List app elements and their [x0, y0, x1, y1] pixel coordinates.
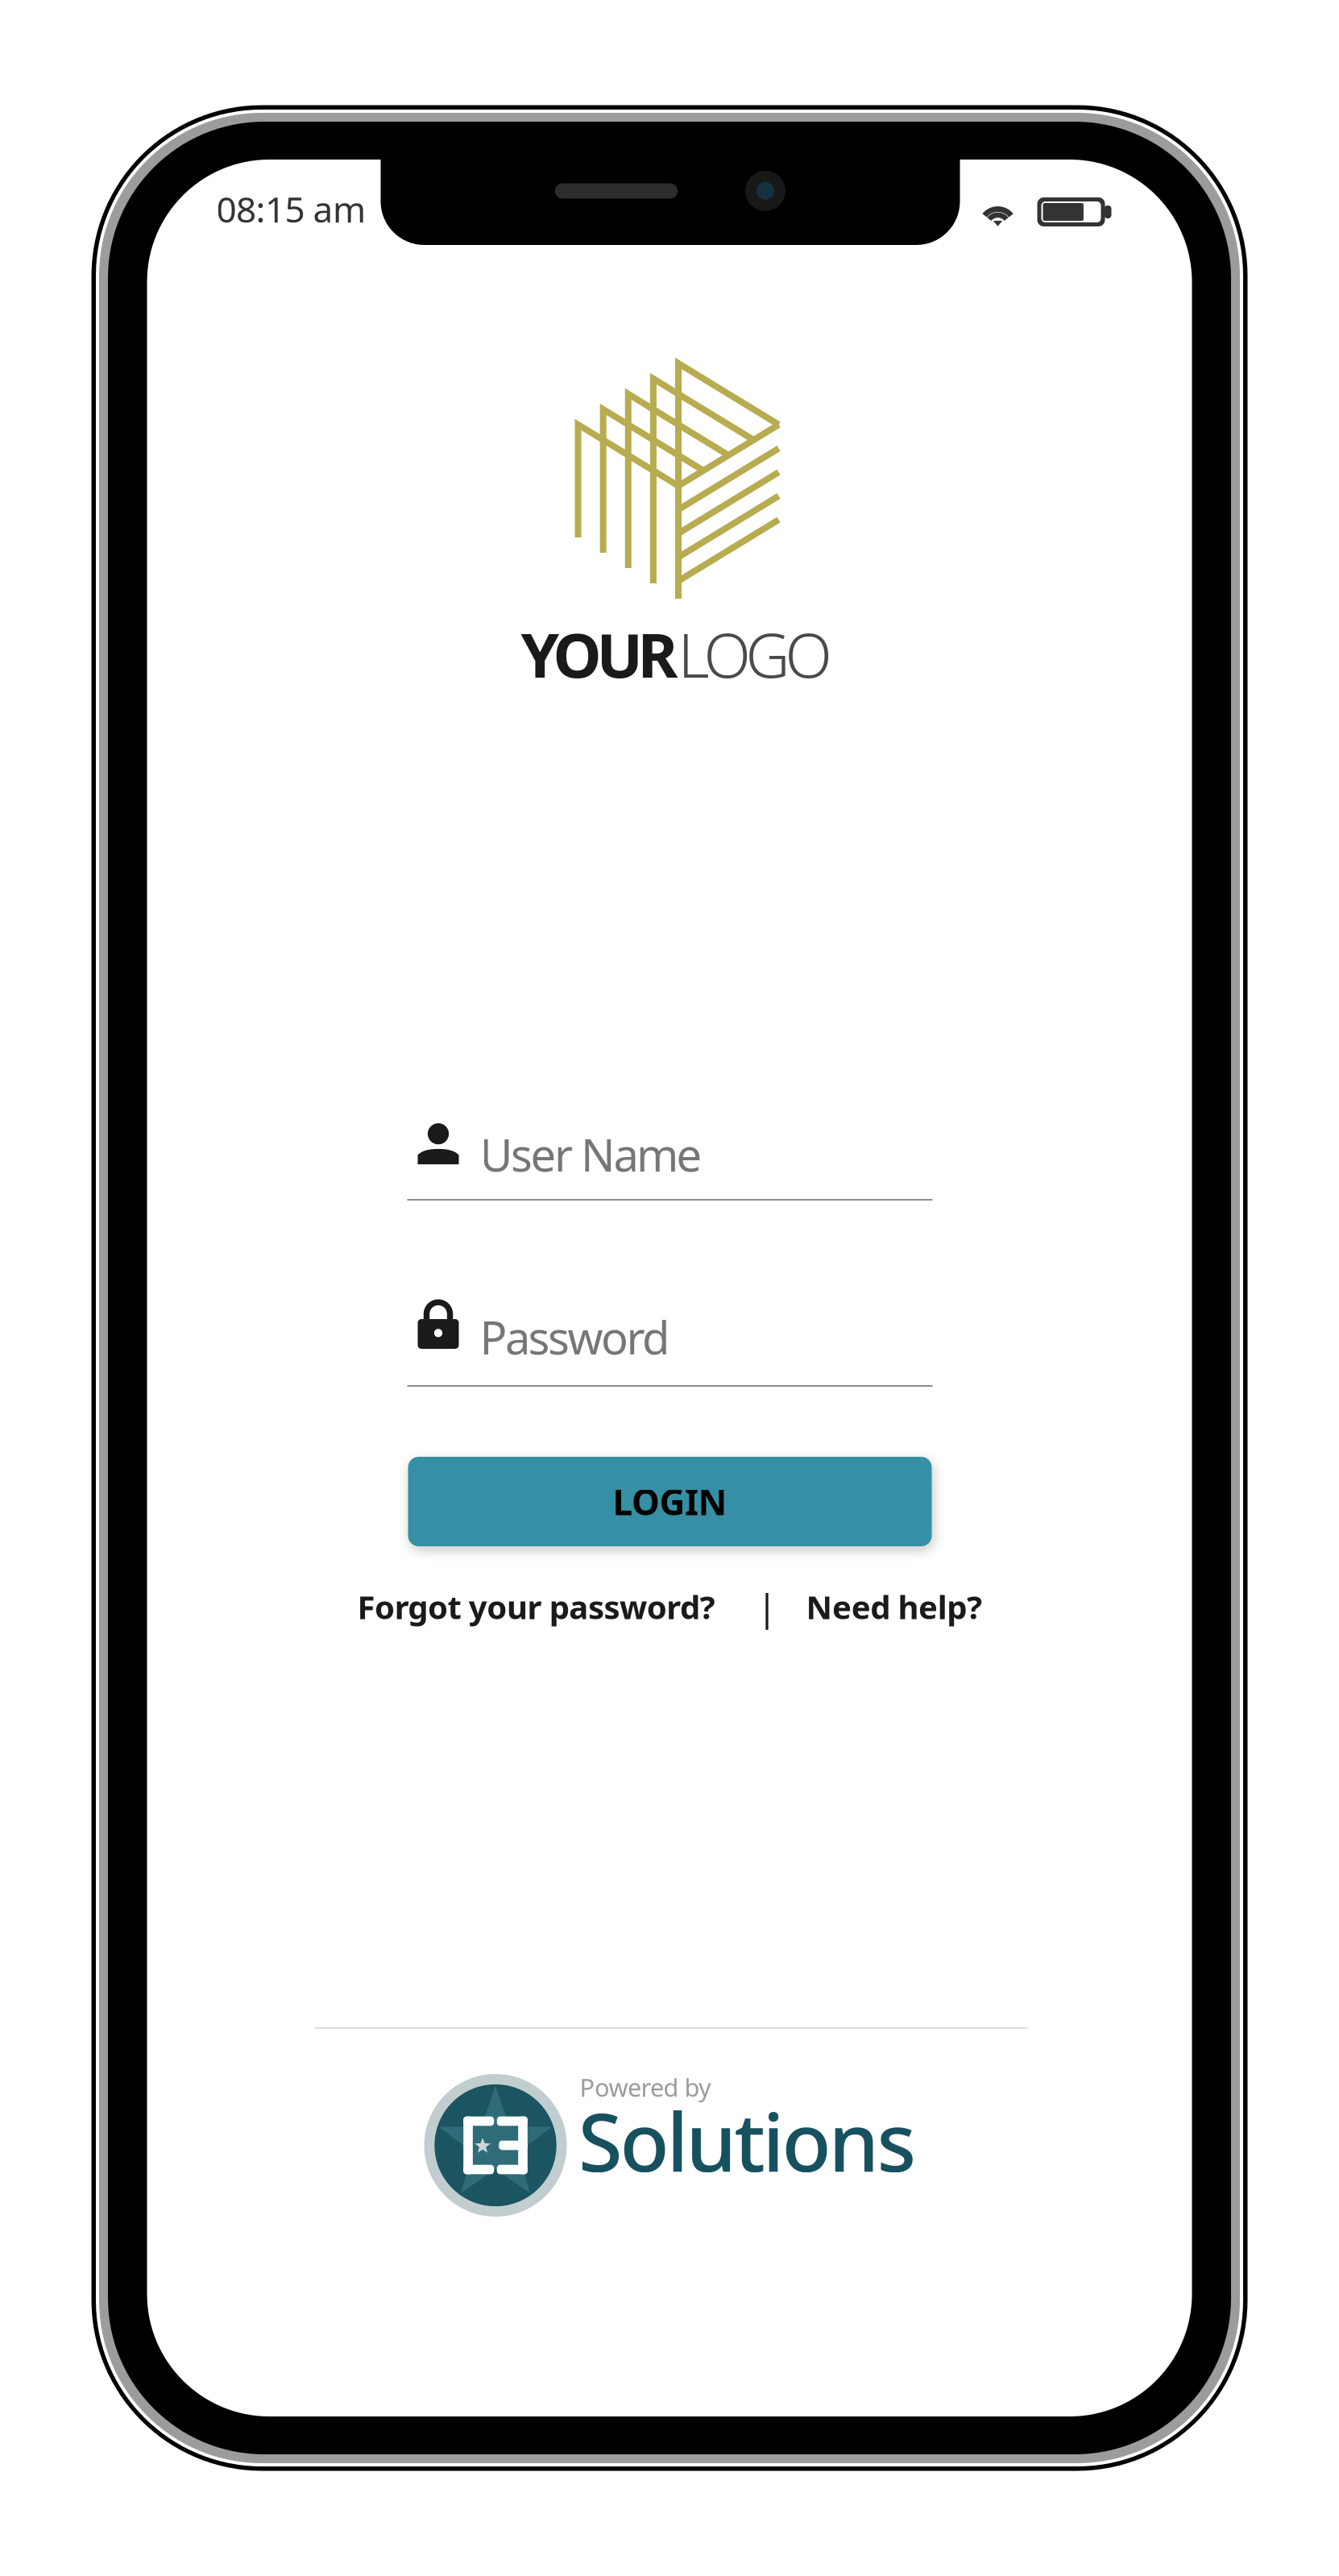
staticText: LOGIN	[613, 1478, 727, 1525]
staticText: YOUR	[521, 613, 678, 694]
staticText: User Name	[480, 1124, 702, 1184]
staticText: Solutions	[578, 2087, 916, 2194]
staticText: 08:15 am	[216, 185, 366, 232]
staticText: |	[757, 1583, 777, 1631]
button[interactable]: Need help?	[806, 1585, 982, 1628]
button[interactable]: LOGIN	[408, 1457, 932, 1546]
staticText: Forgot your password?	[357, 1585, 715, 1628]
staticText: Powered by	[580, 2071, 711, 2104]
staticText: LOGO	[678, 613, 832, 694]
staticText: Password	[480, 1307, 669, 1367]
staticText: Need help?	[806, 1585, 982, 1628]
button[interactable]: Forgot your password?	[357, 1585, 715, 1628]
